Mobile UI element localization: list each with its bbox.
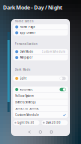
button[interactable]: Wallpaper [13, 55, 68, 60]
button[interactable]: Back [28, 131, 30, 133]
button[interactable]: Battery Strategy [13, 99, 68, 105]
staticText: Dark Mode [20, 50, 34, 53]
button[interactable]: Light 06:30 [13, 120, 39, 125]
staticText: Home Page [20, 25, 36, 29]
staticText: Dark Mode - Day / Night [3, 4, 62, 11]
button[interactable]: Recent apps [50, 131, 52, 133]
button[interactable]: Dark Mode [13, 49, 68, 54]
staticText: Light [20, 77, 27, 80]
staticText: Personalization [15, 42, 38, 46]
staticText: Dark Mode [15, 68, 31, 71]
button[interactable]: Sunset to Sunrise [13, 105, 68, 111]
button[interactable]: Custom Schedule [13, 112, 68, 118]
staticText: App Drawer [20, 31, 36, 34]
button[interactable]: Dark 20:00 [41, 120, 68, 125]
button[interactable]: Follow System [13, 93, 68, 99]
staticText: Custom Schedule [42, 50, 66, 53]
staticText: Light 06:30 [17, 121, 34, 124]
button[interactable]: Automatic [13, 86, 68, 92]
staticText: Custom Schedule [15, 113, 39, 117]
button[interactable]: Home [39, 131, 42, 133]
staticText: Home Screen [15, 19, 34, 23]
staticText: Automatic [20, 88, 33, 91]
button[interactable]: Light [13, 76, 68, 81]
button[interactable]: App Drawer [13, 30, 68, 35]
staticText: Wallpaper [20, 56, 33, 59]
staticText: Battery Strategy [15, 100, 35, 104]
button[interactable]: Home Page [13, 24, 68, 30]
staticText: Dark 20:00 [46, 121, 61, 124]
staticText: Sunset to Sunrise [15, 107, 39, 110]
staticText: Follow System [15, 94, 33, 98]
